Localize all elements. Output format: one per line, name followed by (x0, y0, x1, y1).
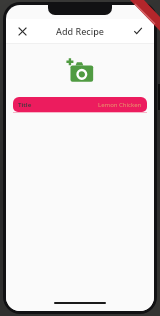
staticText: Title (18, 101, 32, 109)
staticText: Lemon Chicken (98, 101, 142, 109)
button[interactable]: Save recipe (130, 23, 146, 39)
button[interactable]: Title (13, 97, 147, 112)
button[interactable]: Add photo (63, 54, 97, 88)
staticText: Add Recipe (56, 25, 104, 37)
button[interactable]: Close (14, 23, 30, 39)
